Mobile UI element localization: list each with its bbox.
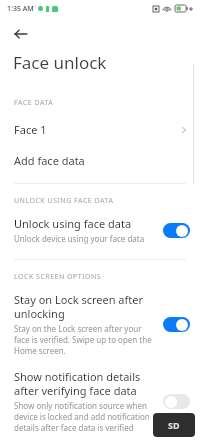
staticText: FACE DATA [14, 98, 54, 108]
staticText: 1:35 AM [7, 4, 34, 14]
button[interactable]: Add face data [0, 145, 200, 178]
staticText: Stay on Lock screen after unlocking [14, 292, 157, 321]
button[interactable]: Back [8, 21, 34, 47]
button[interactable]: Toggle on [163, 317, 190, 332]
button[interactable]: Unlock using face data [0, 212, 200, 253]
staticText: Unlock using face data [14, 216, 132, 231]
staticText: SD [168, 419, 180, 431]
staticText: Unlock device using your face data [14, 233, 145, 244]
staticText: Face 1 [14, 122, 47, 137]
button[interactable]: Face 1 [0, 114, 200, 145]
staticText: Show notification details after verifyin… [14, 369, 157, 398]
staticText: UNLOCK USING FACE DATA [14, 196, 114, 206]
button[interactable]: Stay on Lock screen after unlocking [0, 288, 200, 365]
button[interactable]: Show notification details after verifyin… [0, 365, 200, 442]
staticText: LOCK SCREEN OPTIONS [14, 272, 102, 282]
staticText: Face unlock [13, 51, 107, 74]
button[interactable]: Toggle off [163, 394, 190, 409]
button[interactable]: Toggle on [163, 223, 190, 238]
staticText: Stay on the Lock screen after your face … [14, 323, 157, 356]
staticText: Add face data [14, 153, 85, 168]
staticText: Show only notification source when devic… [14, 400, 157, 433]
